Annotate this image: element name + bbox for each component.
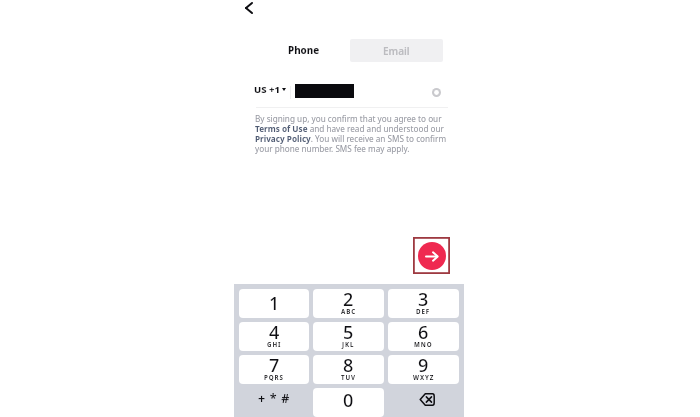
- button[interactable]: 3: [388, 289, 459, 318]
- staticText: Phone: [288, 44, 320, 57]
- staticText: 5: [343, 322, 354, 345]
- button[interactable]: Clear: [428, 84, 444, 100]
- staticText: 0: [343, 388, 354, 413]
- staticText: 7: [269, 355, 280, 378]
- staticText: 4: [269, 322, 280, 345]
- button[interactable]: US +1: [254, 83, 286, 96]
- staticText: 8: [343, 355, 354, 378]
- button[interactable]: 9: [388, 355, 459, 384]
- staticText: ABC: [341, 307, 357, 315]
- button[interactable]: 6: [388, 322, 459, 351]
- button[interactable]: 0: [313, 388, 384, 417]
- staticText: 1: [269, 291, 280, 316]
- staticText: DEF: [416, 307, 431, 315]
- staticText: PQRS: [264, 373, 284, 381]
- staticText: 9: [418, 355, 429, 378]
- button[interactable]: 1: [239, 289, 309, 318]
- staticText: 6: [418, 322, 429, 345]
- staticText: GHI: [267, 340, 282, 348]
- staticText: 2: [343, 289, 354, 312]
- staticText: + * #: [258, 390, 291, 407]
- button[interactable]: Delete: [388, 388, 459, 417]
- staticText: TUV: [341, 373, 356, 381]
- button[interactable]: 8: [313, 355, 384, 384]
- staticText: Email: [383, 44, 410, 58]
- staticText: 3: [418, 289, 429, 312]
- button[interactable]: 5: [313, 322, 384, 351]
- button[interactable]: Phone: [234, 39, 350, 62]
- staticText: WXYZ: [413, 373, 435, 381]
- button[interactable]: 2: [313, 289, 384, 318]
- button[interactable]: 7: [239, 355, 309, 384]
- button[interactable]: Next: [413, 237, 450, 274]
- button[interactable]: 4: [239, 322, 309, 351]
- button[interactable]: Email: [350, 39, 443, 62]
- button[interactable]: Back: [238, 0, 260, 19]
- button[interactable]: + * #: [239, 388, 309, 417]
- staticText: US +1: [254, 83, 280, 96]
- staticText: MNO: [414, 340, 433, 348]
- staticText: By signing up, you confirm that you agre…: [255, 113, 456, 154]
- staticText: JKL: [342, 340, 355, 348]
